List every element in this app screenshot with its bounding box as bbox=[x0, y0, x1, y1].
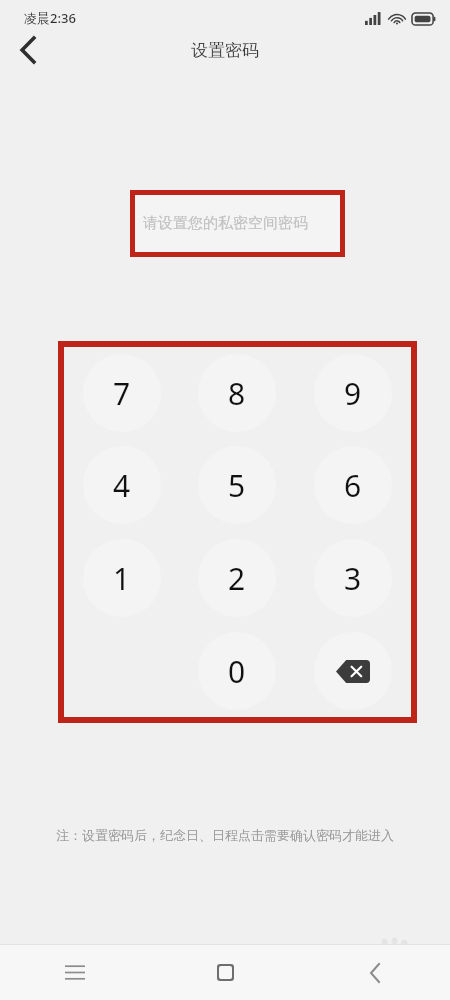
staticText: 请设置您的私密空间密码 bbox=[143, 214, 308, 233]
button[interactable]: 8 bbox=[198, 354, 276, 432]
staticText: 7 bbox=[113, 373, 131, 414]
button[interactable]: 7 bbox=[83, 354, 161, 432]
button[interactable]: Home bbox=[150, 945, 300, 1000]
button[interactable]: 3 bbox=[314, 539, 392, 617]
staticText: 注：设置密码后，纪念日、日程点击需要确认密码才能进入 bbox=[0, 827, 450, 843]
staticText: 0 bbox=[228, 651, 246, 692]
staticText: 1 bbox=[113, 558, 131, 599]
button[interactable]: 4 bbox=[83, 446, 161, 524]
button[interactable]: Back bbox=[6, 28, 50, 72]
button[interactable]: 9 bbox=[314, 354, 392, 432]
button[interactable]: 2 bbox=[198, 539, 276, 617]
button[interactable]: 1 bbox=[83, 539, 161, 617]
button[interactable]: 请设置您的私密空间密码 bbox=[135, 195, 340, 252]
staticText: 5 bbox=[228, 465, 246, 506]
staticText: 4 bbox=[113, 465, 131, 506]
button[interactable]: 0 bbox=[198, 632, 276, 710]
staticText: 9 bbox=[344, 373, 362, 414]
button[interactable]: 6 bbox=[314, 446, 392, 524]
staticText: 2 bbox=[228, 558, 246, 599]
staticText: jingyan.baidu.com bbox=[333, 969, 403, 980]
button[interactable]: Delete bbox=[314, 632, 392, 710]
button[interactable]: Back bbox=[300, 945, 450, 1000]
staticText: 8 bbox=[228, 373, 246, 414]
staticText: 设置密码 bbox=[191, 40, 259, 61]
button[interactable]: Recent apps bbox=[0, 945, 150, 1000]
staticText: 6 bbox=[344, 465, 362, 506]
staticText: Baidu经验 bbox=[332, 950, 415, 973]
button[interactable]: 5 bbox=[198, 446, 276, 524]
staticText: 3 bbox=[344, 558, 362, 599]
staticText: 凌晨2:36 bbox=[24, 9, 76, 27]
